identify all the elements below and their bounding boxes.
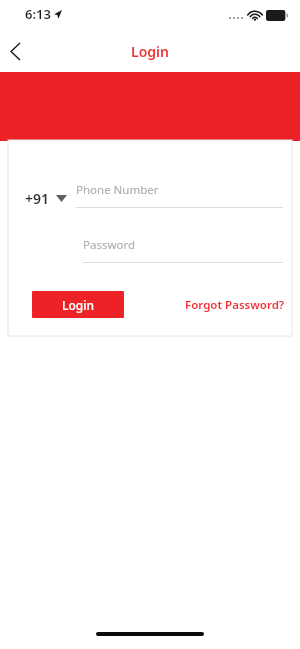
staticText: +91 — [25, 189, 50, 208]
staticText: Password — [83, 237, 136, 253]
button[interactable]: Back — [0, 31, 40, 71]
button[interactable]: Forgot Password? — [183, 293, 287, 317]
staticText: Login — [131, 42, 169, 61]
staticText: 6:13 — [25, 5, 51, 23]
button[interactable]: +91 — [25, 189, 67, 208]
button[interactable]: Phone Number — [76, 182, 283, 208]
staticText: Login — [62, 297, 94, 313]
button[interactable]: Login — [32, 291, 124, 318]
button[interactable]: Password — [83, 237, 283, 263]
staticText: Phone Number — [76, 182, 159, 198]
staticText: Forgot Password? — [185, 297, 285, 313]
